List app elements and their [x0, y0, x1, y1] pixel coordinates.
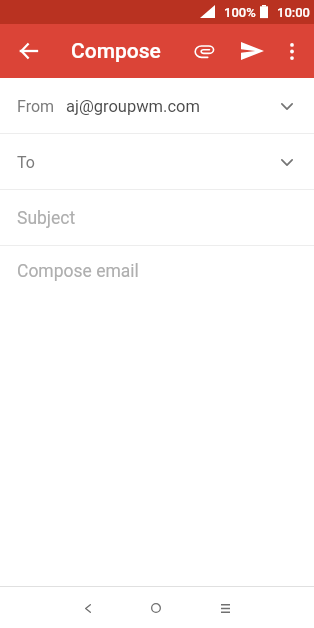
staticText: 100%: [224, 5, 256, 20]
button[interactable]: Back: [68, 588, 108, 628]
button[interactable]: Show recipients: [271, 90, 303, 122]
button[interactable]: Recent apps: [205, 588, 245, 628]
staticText: From: [17, 97, 55, 116]
button[interactable]: Home: [136, 588, 176, 628]
button[interactable]: Show recipients: [271, 146, 303, 178]
staticText: aj@groupwm.com: [66, 97, 200, 116]
staticText: Compose email: [17, 261, 139, 282]
staticText: 10:00: [277, 5, 311, 20]
button[interactable]: Send: [230, 29, 274, 73]
staticText: Compose: [71, 39, 161, 64]
staticText: To: [17, 153, 35, 172]
button[interactable]: Navigate up: [4, 27, 52, 75]
button[interactable]: Attach file: [183, 30, 227, 74]
staticText: Subject: [17, 208, 76, 229]
button[interactable]: More options: [272, 29, 312, 73]
